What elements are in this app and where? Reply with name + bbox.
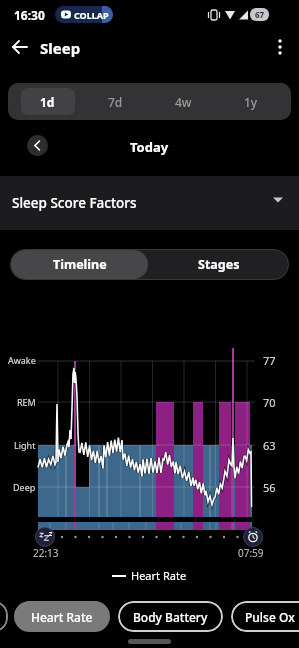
staticText: Stages: [198, 256, 240, 273]
staticText: 56: [263, 480, 276, 495]
button[interactable]: Stages: [148, 249, 289, 280]
staticText: Heart Rate: [131, 568, 187, 583]
button[interactable]: 1y: [217, 83, 285, 120]
staticText: 4w: [175, 94, 192, 110]
button[interactable]: [6, 33, 34, 61]
button[interactable]: 7d: [81, 83, 149, 120]
staticText: Sleep: [40, 38, 81, 58]
button[interactable]: [266, 33, 294, 61]
button[interactable]: Timeline: [11, 250, 148, 279]
button[interactable]: Pulse Ox: [231, 601, 299, 632]
staticText: 7d: [108, 94, 123, 110]
button[interactable]: Heart Rate: [14, 601, 110, 632]
staticText: 1d: [40, 94, 55, 110]
staticText: 77: [263, 353, 276, 368]
staticText: 16:30: [14, 7, 45, 23]
staticText: Sleep Score Factors: [12, 194, 137, 212]
staticText: 22:13: [33, 546, 59, 560]
staticText: COLLAP: [74, 9, 109, 21]
staticText: 07:59: [238, 546, 264, 560]
staticText: Awake: [8, 354, 36, 366]
button[interactable]: 1d: [14, 83, 81, 120]
staticText: REM: [17, 396, 36, 408]
staticText: Today: [130, 138, 169, 156]
staticText: Timeline: [53, 256, 107, 273]
staticText: Body Battery: [133, 609, 208, 625]
staticText: 70: [263, 395, 276, 410]
staticText: 1y: [244, 94, 258, 110]
staticText: Heart Rate: [31, 609, 93, 625]
button[interactable]: [27, 135, 48, 156]
staticText: Deep: [13, 481, 36, 493]
staticText: Light: [14, 439, 36, 451]
button[interactable]: Sleep Score Factors: [0, 176, 299, 230]
button[interactable]: 4w: [149, 83, 217, 120]
staticText: Pulse Ox: [245, 609, 295, 625]
button[interactable]: COLLAP: [55, 6, 113, 23]
staticText: 67: [255, 9, 265, 20]
staticText: 63: [263, 438, 276, 453]
button[interactable]: Body Battery: [118, 601, 223, 632]
